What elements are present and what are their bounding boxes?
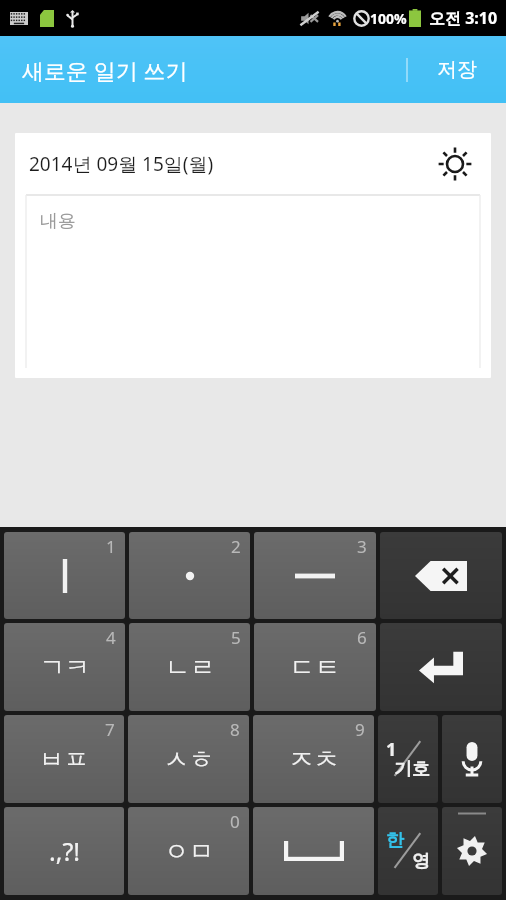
staticText: 저장 xyxy=(437,57,477,82)
staticText: 새로운 일기 쓰기 xyxy=(22,55,188,85)
button[interactable]: 내용 xyxy=(26,195,480,368)
staticText: 영 xyxy=(412,850,430,873)
button[interactable]: Enter xyxy=(380,623,502,711)
staticText: 4 xyxy=(106,626,116,649)
staticText: ㅅㅎ xyxy=(164,744,214,775)
button[interactable]: Backspace xyxy=(380,532,502,619)
staticText: 5 xyxy=(231,626,241,649)
staticText: 1 xyxy=(106,535,116,558)
staticText: 1 xyxy=(386,737,397,762)
staticText: ㅂㅍ xyxy=(39,744,89,775)
staticText: 3 xyxy=(357,535,367,558)
staticText: ㄷㅌ xyxy=(290,652,340,683)
staticText: 6 xyxy=(357,626,367,649)
staticText: 내용 xyxy=(40,210,76,233)
staticText: ㅈㅊ xyxy=(289,744,339,775)
button[interactable]: 4 xyxy=(4,623,125,711)
button[interactable]: 1 xyxy=(4,532,125,619)
staticText: ㄱㅋ xyxy=(40,652,90,683)
staticText: 100% xyxy=(370,9,407,28)
button[interactable]: .,?! xyxy=(4,807,124,895)
button[interactable]: Voice input xyxy=(442,715,502,803)
button[interactable]: 8 xyxy=(128,715,249,803)
button[interactable]: 7 xyxy=(4,715,124,803)
staticText: ㅇㅁ xyxy=(164,836,214,867)
button[interactable]: Space xyxy=(253,807,374,895)
staticText: 2014년 09월 15일(월) xyxy=(29,151,214,177)
staticText: 기호 xyxy=(394,758,430,781)
staticText: 2 xyxy=(231,535,241,558)
button[interactable]: 저장 xyxy=(408,36,506,103)
button[interactable]: 9 xyxy=(253,715,374,803)
button[interactable]: 1 xyxy=(378,715,438,803)
button[interactable]: 6 xyxy=(254,623,376,711)
staticText: ㄴㄹ xyxy=(165,652,215,683)
button[interactable]: 0 xyxy=(128,807,249,895)
staticText: 9 xyxy=(355,718,365,741)
staticText: 한 xyxy=(386,829,404,852)
staticText: 0 xyxy=(230,810,240,833)
button[interactable]: 3 xyxy=(254,532,376,619)
button[interactable]: Weather xyxy=(433,142,477,186)
staticText: 오전 3:10 xyxy=(429,7,498,29)
button[interactable]: Settings xyxy=(442,807,502,895)
button[interactable]: 5 xyxy=(129,623,250,711)
button[interactable]: 한 xyxy=(378,807,438,895)
staticText: 8 xyxy=(230,718,240,741)
staticText: 7 xyxy=(105,718,115,741)
staticText: .,?! xyxy=(49,834,80,868)
button[interactable]: 2 xyxy=(129,532,250,619)
